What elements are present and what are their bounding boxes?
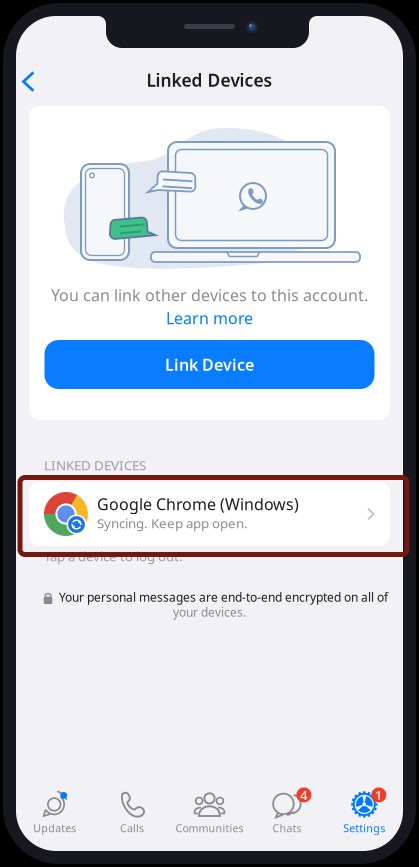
staticText: Communities [175,821,243,835]
staticText: Your personal messages are end-to-end en… [59,589,388,605]
staticText: 1 [375,786,383,804]
staticText: Chats [272,821,301,835]
button[interactable]: Learn more [29,309,390,327]
staticText: Linked Devices [146,68,272,91]
staticText: Google Chrome (Windows) [97,493,299,515]
staticText: Syncing. Keep app open. [97,514,248,532]
staticText: LINKED DEVICES [44,456,146,474]
staticText: You can link other devices to this accou… [51,284,368,306]
button[interactable]: Link Device [44,340,374,389]
staticText: Link Device [165,354,254,375]
staticText: Calls [120,821,144,835]
button[interactable]: Google Chrome (Windows) [29,482,390,546]
button[interactable]: 4 [248,787,326,839]
button[interactable]: Communities [171,787,248,839]
staticText: 4 [300,786,308,804]
staticText: your devices. [173,604,246,620]
staticText: Tap a device to log out. [44,547,183,565]
button[interactable]: Updates [16,787,93,839]
staticText: Settings [343,821,385,835]
button[interactable]: Back [12,61,45,102]
staticText: Learn more [166,307,253,329]
staticText: Updates [33,821,76,835]
button[interactable]: 1 [326,787,403,839]
button[interactable]: Calls [93,787,171,839]
